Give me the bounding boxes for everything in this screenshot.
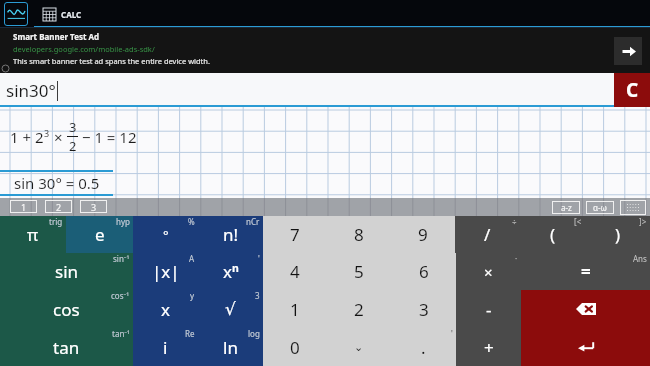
button[interactable]: sin⁻¹ (0, 253, 133, 290)
button[interactable]: ' (198, 253, 263, 290)
button[interactable]: 8 (327, 216, 391, 253)
button[interactable]: CALC (34, 0, 650, 28)
button[interactable]: ⌄ (327, 328, 391, 366)
button[interactable]: 1 (263, 290, 327, 328)
staticText: 9 (418, 223, 428, 246)
button[interactable]: · (456, 253, 521, 290)
staticText: Re (185, 328, 195, 339)
button[interactable]: sin30° (0, 73, 614, 107)
button[interactable]: Re (133, 328, 198, 366)
staticText: This smart banner test ad spans the enti… (13, 56, 210, 66)
button[interactable]: ]> (585, 216, 650, 253)
staticText: 5 (354, 260, 364, 283)
button[interactable]: sin 30° = 0.5 (0, 170, 113, 196)
staticText: A (189, 253, 195, 264)
staticText: sin⁻¹ (113, 253, 130, 264)
staticText: Smart Banner Test Ad (13, 31, 100, 42)
button[interactable]: 1 (10, 200, 37, 213)
button[interactable]: trig (0, 216, 66, 253)
button[interactable]: 5 (327, 253, 391, 290)
button[interactable]: [< (520, 216, 585, 253)
button[interactable]: nCr (198, 216, 263, 253)
staticText: cos (53, 298, 80, 321)
button[interactable]: 6 (391, 253, 456, 290)
staticText: ) (615, 223, 621, 246)
staticText: 1 (290, 298, 300, 321)
button[interactable]: Backspace (521, 290, 650, 328)
button[interactable]: α-ω (586, 201, 614, 214)
staticText: x (223, 260, 232, 283)
staticText: ' (451, 328, 453, 339)
staticText: 6 (419, 260, 429, 283)
staticText: Ans (633, 253, 647, 264)
button[interactable]: + (456, 328, 521, 366)
staticText: . (421, 336, 426, 359)
staticText: ( (550, 223, 556, 246)
staticText: × (484, 262, 493, 282)
staticText: α-ω (593, 202, 607, 213)
staticText: − 1 = 12 (78, 127, 137, 147)
staticText: / (484, 223, 491, 246)
button[interactable]: A (133, 253, 198, 290)
button[interactable]: Open ad (614, 37, 642, 65)
button[interactable]: 2 (327, 290, 391, 328)
staticText: tan⁻¹ (112, 328, 130, 339)
staticText: y (190, 290, 195, 301)
button[interactable]: Enter (521, 328, 650, 366)
staticText: 4 (290, 260, 300, 283)
staticText: nCr (246, 216, 260, 227)
staticText: i (163, 336, 168, 359)
staticText: n! (223, 223, 239, 246)
staticText: 3 (255, 290, 260, 301)
staticText: sin30° (6, 79, 56, 102)
staticText: 2 (69, 137, 77, 155)
staticText: ⌄ (354, 341, 364, 354)
staticText: + (484, 336, 494, 359)
button[interactable]: log (198, 328, 263, 366)
button[interactable]: - (456, 290, 521, 328)
button[interactable]: Smart Banner Test Ad (0, 28, 650, 73)
staticText: 3 (44, 127, 50, 139)
button[interactable]: 9 (391, 216, 455, 253)
staticText: log (248, 328, 260, 339)
staticText: [< (574, 216, 582, 227)
button[interactable]: ÷ (455, 216, 520, 253)
button[interactable]: % (133, 216, 198, 253)
button[interactable]: 0 (263, 328, 327, 366)
staticText: = (581, 260, 591, 283)
staticText: × (50, 127, 67, 147)
button[interactable]: 7 (263, 216, 327, 253)
button[interactable]: 3 (198, 290, 263, 328)
button[interactable]: C (614, 73, 650, 107)
staticText: a-z (561, 202, 572, 213)
button[interactable]: 4 (263, 253, 327, 290)
button[interactable]: a-z (552, 201, 580, 214)
button[interactable]: App logo (4, 2, 28, 26)
button[interactable]: y (133, 290, 198, 328)
button[interactable]: 3 (80, 200, 107, 213)
staticText: 3 (419, 298, 429, 321)
staticText: % (188, 216, 195, 227)
staticText: 2 (56, 201, 62, 213)
button[interactable]: Ans (521, 253, 650, 290)
staticText: 8 (354, 223, 364, 246)
button[interactable]: Keyboard (620, 200, 646, 215)
staticText: n (232, 261, 239, 275)
button[interactable]: ' (391, 328, 456, 366)
staticText: sin 30° = 0.5 (14, 173, 100, 193)
button[interactable]: hyp (66, 216, 133, 253)
staticText: ° (163, 226, 169, 244)
staticText: 3 (69, 118, 77, 136)
staticText: x (161, 298, 170, 321)
staticText: 2 (354, 298, 364, 321)
button[interactable]: cos⁻¹ (0, 290, 133, 328)
button[interactable]: tan⁻¹ (0, 328, 133, 366)
staticText: ]> (639, 216, 647, 227)
button[interactable]: 3 (391, 290, 456, 328)
staticText: developers.google.com/mobile-ads-sdk/ (13, 44, 155, 54)
button[interactable]: 2 (45, 200, 72, 213)
staticText: trig (49, 216, 63, 227)
staticText: 1 + 2 (10, 127, 44, 147)
staticText: ÷ (512, 216, 517, 227)
staticText: √ (225, 299, 236, 319)
